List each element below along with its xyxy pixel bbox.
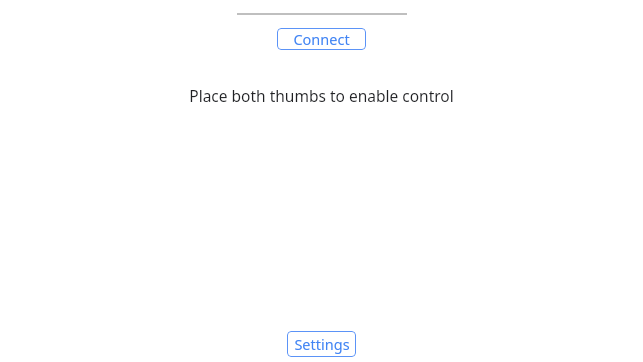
staticText: Settings: [294, 334, 350, 354]
staticText: Place both thumbs to enable control: [0, 85, 643, 106]
button[interactable]: Settings: [287, 331, 356, 357]
staticText: Connect: [293, 29, 350, 49]
button[interactable]: Connect: [277, 28, 366, 50]
